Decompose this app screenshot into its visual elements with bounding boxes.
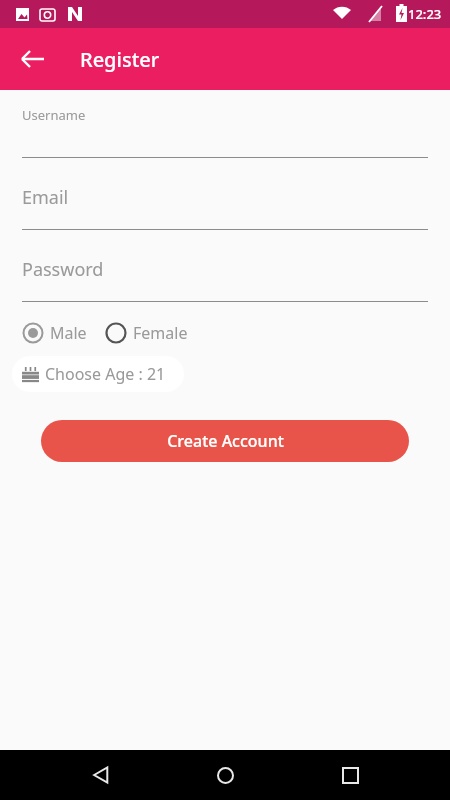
button[interactable]: Recent apps [326,751,374,799]
staticText: Email [22,185,69,210]
button[interactable]: Female [105,322,194,344]
staticText: Password [22,257,104,282]
button[interactable]: Create Account [41,420,409,462]
staticText: Username [22,106,86,124]
staticText: Female [133,322,188,344]
button[interactable]: Male [22,322,93,344]
staticText: Register [80,46,160,73]
button[interactable]: Password [0,234,450,302]
button[interactable]: Back [77,751,125,799]
staticText: Choose Age : 21 [45,363,166,385]
button[interactable]: Username [0,90,450,158]
button[interactable]: Home [201,751,249,799]
staticText: Male [50,322,87,344]
button[interactable]: Back [10,36,56,82]
button[interactable]: Choose Age : 21 [12,356,184,392]
staticText: Create Account [167,430,284,452]
button[interactable]: Email [0,162,450,230]
staticText: 12:23 [408,5,442,23]
